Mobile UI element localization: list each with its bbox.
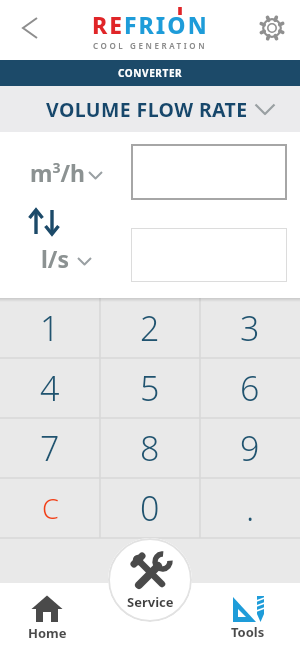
staticText: l/s xyxy=(41,243,69,274)
button[interactable]: m3/h xyxy=(16,144,116,200)
button[interactable]: 8 xyxy=(100,418,200,478)
staticText: 2 xyxy=(140,305,160,351)
staticText: 3 xyxy=(240,305,260,351)
staticText: 5 xyxy=(140,365,160,411)
staticText: VOLUME FLOW RATE xyxy=(46,96,248,123)
staticText: 7 xyxy=(40,425,60,471)
staticText: Home xyxy=(28,624,67,642)
staticText: . xyxy=(246,485,255,531)
staticText: REFRION xyxy=(92,9,209,40)
button[interactable]: C xyxy=(0,478,100,538)
button[interactable]: Tools xyxy=(212,595,284,647)
button[interactable]: VOLUME FLOW RATE xyxy=(0,86,300,132)
button[interactable]: Home xyxy=(11,595,83,647)
button[interactable]: 4 xyxy=(0,358,100,418)
button[interactable]: 2 xyxy=(100,298,200,358)
button[interactable]: . xyxy=(200,478,300,538)
button[interactable]: 6 xyxy=(200,358,300,418)
button[interactable]: 0 xyxy=(100,478,200,538)
staticText: 0 xyxy=(140,485,160,531)
staticText: m3/h xyxy=(30,157,85,188)
staticText: 9 xyxy=(240,425,260,471)
button[interactable] xyxy=(131,144,287,200)
staticText: COOL GENERATION xyxy=(93,40,208,51)
button[interactable]: 1 xyxy=(0,298,100,358)
button[interactable]: l/s xyxy=(16,234,116,282)
staticText: C xyxy=(42,490,59,527)
button[interactable]: Service xyxy=(108,538,192,622)
button[interactable] xyxy=(20,202,68,242)
button[interactable]: 7 xyxy=(0,418,100,478)
button[interactable] xyxy=(131,228,287,282)
button[interactable]: 3 xyxy=(200,298,300,358)
staticText: 1 xyxy=(40,305,60,351)
staticText: Tools xyxy=(231,623,265,641)
staticText: 8 xyxy=(140,425,160,471)
staticText: 4 xyxy=(40,365,60,411)
button[interactable] xyxy=(250,6,294,50)
staticText: Service xyxy=(127,593,174,611)
staticText: CONVERTER xyxy=(118,66,183,80)
staticText: 6 xyxy=(240,365,260,411)
button[interactable] xyxy=(8,6,52,50)
button[interactable]: 5 xyxy=(100,358,200,418)
button[interactable]: 9 xyxy=(200,418,300,478)
